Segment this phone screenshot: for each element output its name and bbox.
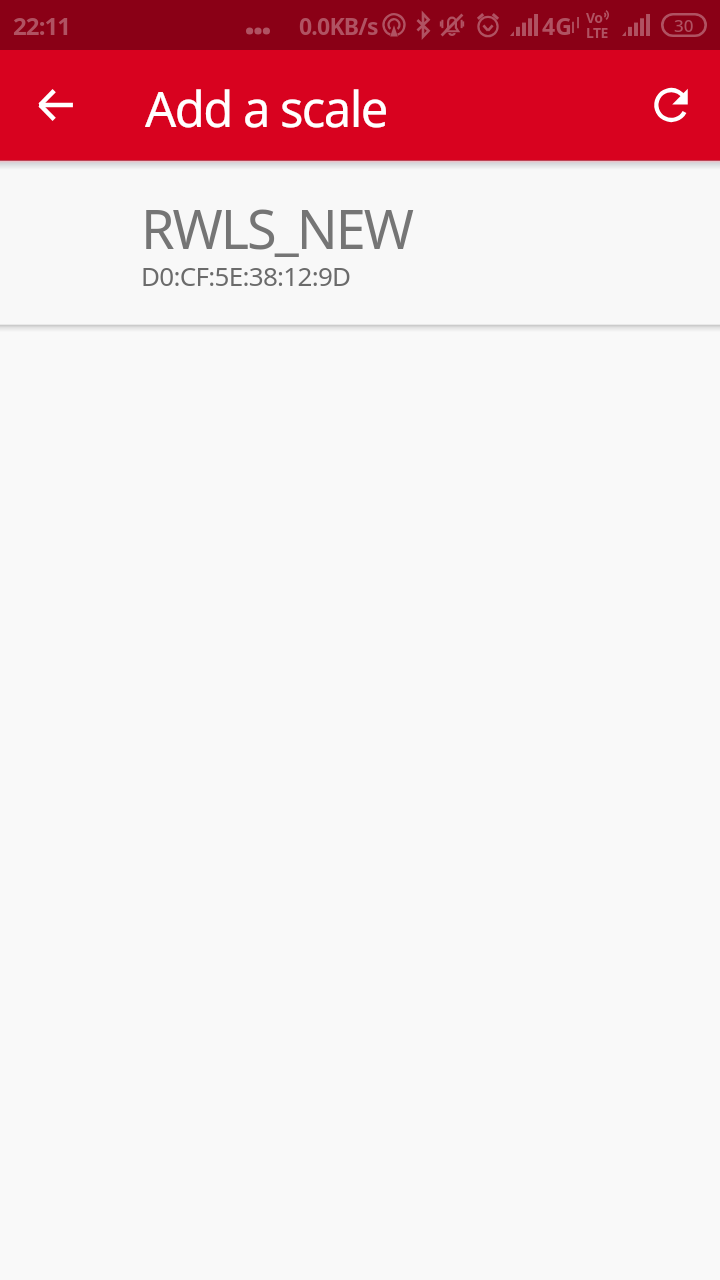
button[interactable]: Back [20,69,92,141]
staticText: D0:CF:5E:38:12:9D [141,258,351,293]
staticText: LTE [586,23,608,42]
staticText: 4G [542,10,572,41]
staticText: 0.0KB/s [299,10,378,41]
staticText: Vo [586,8,603,27]
staticText: 22:11 [13,9,71,42]
staticText: RWLS_NEW [141,191,413,265]
button[interactable]: RWLS_NEW scale, D0:CF:5E:38:12:9D [0,170,720,324]
staticText: Add a scale [145,75,387,142]
button[interactable]: Refresh [636,69,708,141]
staticText: 30 [674,14,694,37]
